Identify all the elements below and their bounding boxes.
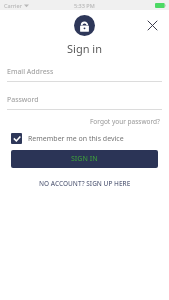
staticText: 5:33 PM — [74, 2, 95, 9]
button[interactable]: NO ACCOUNT? SIGN UP HERE — [36, 176, 134, 191]
staticText: Sign in — [0, 41, 169, 56]
button[interactable]: Password — [7, 95, 162, 110]
staticText: Remember me on this device — [28, 134, 124, 144]
button[interactable]: Close — [142, 15, 162, 35]
staticText: Forgot your password? — [90, 117, 160, 126]
button[interactable]: Remember me on this device — [11, 133, 158, 144]
staticText: Password — [7, 95, 39, 105]
staticText: Carrier — [4, 2, 22, 9]
staticText: Email Address — [7, 67, 54, 77]
button[interactable]: Forgot your password? — [88, 115, 162, 128]
button[interactable]: Email Address — [7, 67, 162, 82]
staticText: NO ACCOUNT? SIGN UP HERE — [39, 179, 131, 188]
staticText: SIGN IN — [71, 154, 98, 164]
button[interactable]: SIGN IN — [11, 150, 158, 168]
